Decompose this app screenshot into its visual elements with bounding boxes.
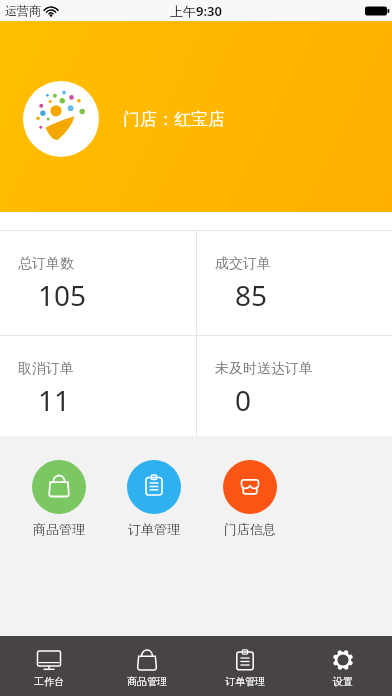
staticText: 上午9:30	[170, 2, 222, 20]
staticText: 总订单数	[18, 255, 74, 273]
button[interactable]: 订单管理	[116, 460, 192, 537]
staticText: 未及时送达订单	[215, 360, 313, 378]
button[interactable]: 商品管理	[21, 460, 97, 537]
staticText: 订单管理	[128, 521, 180, 537]
button[interactable]: 门店：红宝店	[23, 81, 225, 157]
staticText: 商品管理	[127, 675, 167, 688]
staticText: 0	[235, 381, 252, 419]
staticText: 商品管理	[33, 521, 85, 537]
staticText: 门店：红宝店	[123, 109, 225, 130]
staticText: 85	[235, 276, 268, 314]
staticText: 成交订单	[215, 255, 271, 273]
staticText: 设置	[333, 675, 353, 688]
button[interactable]: 商品管理	[98, 636, 196, 696]
staticText: 工作台	[34, 675, 64, 688]
staticText: 订单管理	[225, 675, 265, 688]
button[interactable]: 未及时送达订单	[197, 335, 392, 440]
button[interactable]: 成交订单	[197, 230, 392, 335]
staticText: 取消订单	[18, 360, 74, 378]
button[interactable]: 门店信息	[212, 460, 288, 537]
button[interactable]: 总订单数	[0, 230, 195, 335]
staticText: 运营商	[5, 3, 41, 18]
staticText: 105	[38, 276, 87, 314]
button[interactable]: 工作台	[0, 636, 98, 696]
staticText: 11	[38, 381, 71, 419]
staticText: 门店信息	[224, 521, 276, 537]
button[interactable]: 设置	[294, 636, 392, 696]
button[interactable]: 取消订单	[0, 335, 195, 440]
button[interactable]: 订单管理	[196, 636, 294, 696]
